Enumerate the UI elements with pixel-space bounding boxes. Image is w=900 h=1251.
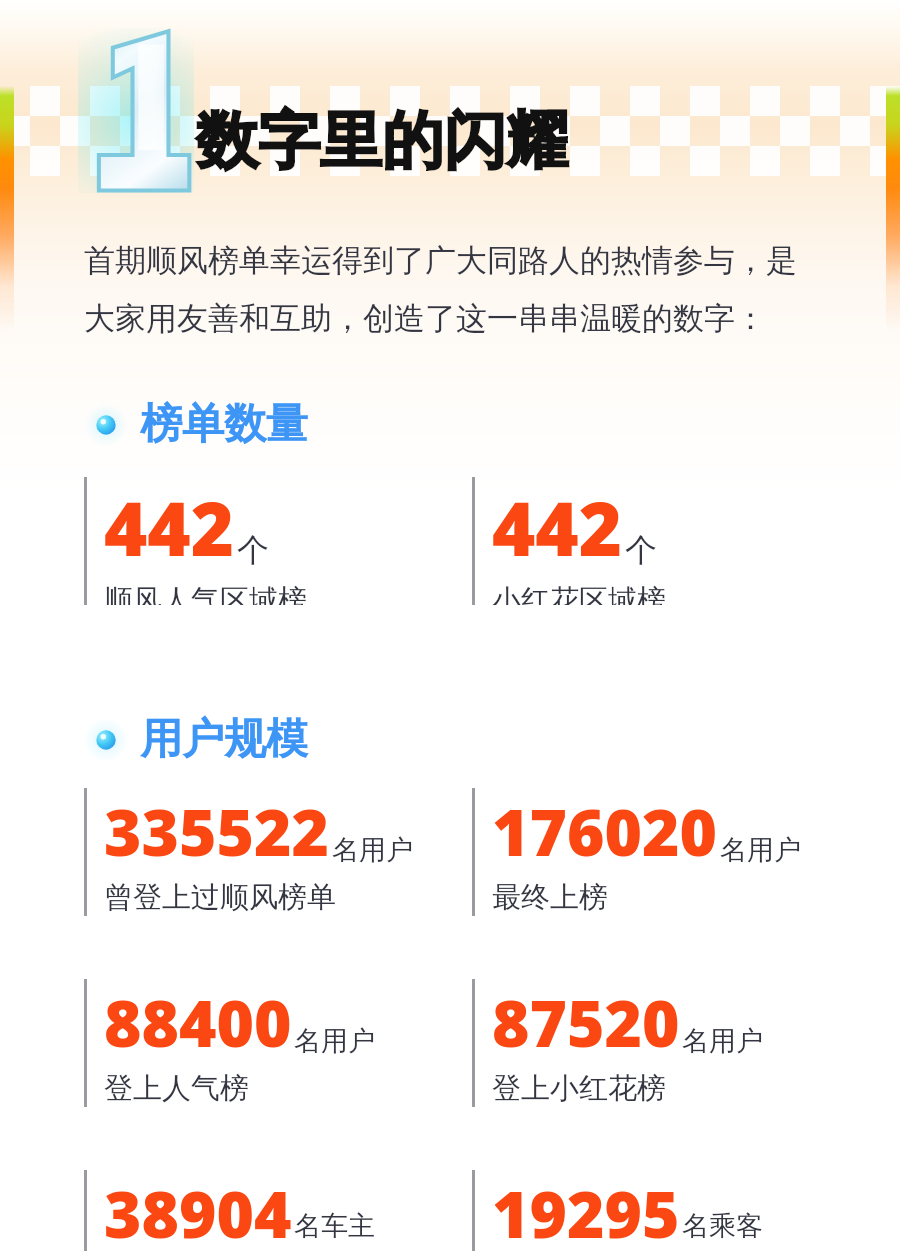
button[interactable]: 176020 xyxy=(472,788,801,916)
button[interactable]: 88400 xyxy=(84,979,375,1107)
button[interactable]: 442 xyxy=(472,477,666,605)
staticText: 用户规模 xyxy=(140,713,308,766)
staticText: 38904 xyxy=(104,1170,292,1251)
staticText: 名用户 xyxy=(720,833,801,867)
staticText: 名车主 xyxy=(294,1209,375,1243)
button[interactable]: 38904 xyxy=(84,1170,394,1251)
button[interactable]: 19295 xyxy=(472,1170,782,1251)
staticText: 榜单数量 xyxy=(140,398,308,451)
staticText: 登上小红花榜 xyxy=(492,1070,666,1107)
staticText: 名用户 xyxy=(682,1024,763,1058)
staticText: 88400 xyxy=(104,979,292,1066)
staticText: 个 xyxy=(237,530,269,570)
staticText: 大家用友善和互助，创造了这一串串温暖的数字： xyxy=(84,299,766,338)
staticText: 442 xyxy=(492,477,623,578)
button[interactable]: 442 xyxy=(84,477,307,605)
staticText: 顺风人气区域榜 xyxy=(104,582,307,605)
staticText: 数字里的闪耀 xyxy=(196,102,568,180)
staticText: 最终上榜 xyxy=(492,879,608,916)
staticText: 名用户 xyxy=(332,833,413,867)
button[interactable]: 335522 xyxy=(84,788,413,916)
staticText: 曾登上过顺风榜单 xyxy=(104,879,336,916)
staticText: 442 xyxy=(104,477,235,578)
staticText: 首期顺风榜单幸运得到了广大同路人的热情参与，是 xyxy=(84,241,797,280)
staticText: 19295 xyxy=(492,1170,680,1251)
staticText: 小红花区域榜 xyxy=(492,582,666,605)
staticText: 名乘客 xyxy=(682,1209,763,1243)
button[interactable]: 用户规模 xyxy=(84,713,308,766)
staticText: 个 xyxy=(625,530,657,570)
button[interactable]: 87520 xyxy=(472,979,763,1107)
staticText: 176020 xyxy=(492,788,718,875)
staticText: 335522 xyxy=(104,788,330,875)
staticText: 登上人气榜 xyxy=(104,1070,249,1107)
button[interactable]: 榜单数量 xyxy=(84,398,308,451)
staticText: 87520 xyxy=(492,979,680,1066)
staticText: 名用户 xyxy=(294,1024,375,1058)
